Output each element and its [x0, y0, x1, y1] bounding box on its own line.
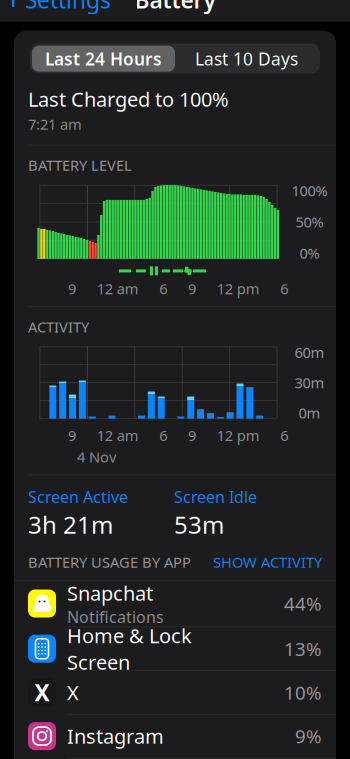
staticText: 6	[280, 279, 288, 298]
staticText: 12 am	[97, 426, 139, 445]
staticText: 50%	[295, 212, 323, 232]
staticText: 0m	[298, 403, 320, 423]
staticText: 53m	[174, 508, 224, 540]
staticText: 9	[188, 426, 196, 445]
staticText: 100%	[291, 181, 327, 200]
staticText: Screen Idle	[174, 486, 257, 507]
staticText: BATTERY LEVEL	[28, 155, 132, 175]
staticText: Instagram	[67, 723, 164, 749]
staticText: Last 10 Days	[195, 47, 298, 70]
staticText: Last Charged to 100%	[28, 86, 229, 112]
staticText: 12 pm	[217, 279, 260, 298]
staticText: 0%	[299, 243, 319, 263]
staticText: 12 am	[97, 279, 139, 298]
staticText: 10%	[284, 680, 322, 705]
staticText: 3h 21m	[28, 508, 113, 540]
staticText: Screen Active	[28, 486, 128, 507]
staticText: Notifications	[67, 606, 164, 627]
staticText: 6	[280, 426, 288, 445]
button[interactable]: Snapchat	[14, 580, 336, 626]
staticText: ACTIVITY	[28, 317, 89, 337]
button[interactable]: Instagram	[14, 715, 336, 758]
staticText: 6	[159, 279, 167, 298]
staticText: 6	[159, 426, 167, 445]
button[interactable]: X	[14, 671, 336, 714]
staticText: 60m	[294, 343, 324, 362]
staticText: 9%	[295, 724, 322, 748]
staticText: 30m	[294, 373, 324, 392]
staticText: BATTERY USAGE BY APP	[28, 552, 191, 572]
staticText: 9	[68, 426, 76, 445]
staticText: X	[34, 677, 49, 707]
staticText: 12 pm	[217, 426, 260, 445]
staticText: 4 Nov	[77, 447, 116, 466]
button[interactable]: SHOW ACTIVITY	[213, 552, 322, 572]
button[interactable]: Last 24 Hours	[32, 46, 175, 72]
staticText: 9	[68, 279, 76, 298]
staticText: 44%	[284, 591, 322, 616]
staticText: 7:21 am	[28, 114, 82, 134]
staticText: Snapchat	[67, 580, 153, 606]
staticText: Home & Lock Screen	[67, 622, 192, 675]
button[interactable]: Settings	[0, 0, 111, 21]
staticText: X	[67, 679, 79, 706]
button[interactable]: Last 10 Days	[175, 46, 318, 72]
staticText: Last 24 Hours	[45, 47, 162, 70]
staticText: SHOW ACTIVITY	[213, 552, 322, 572]
button[interactable]: Home & Lock Screen	[14, 627, 336, 670]
staticText: Settings	[25, 0, 111, 15]
staticText: 13%	[284, 636, 322, 661]
staticText: 9	[188, 279, 196, 298]
staticText: Battery	[134, 0, 215, 15]
